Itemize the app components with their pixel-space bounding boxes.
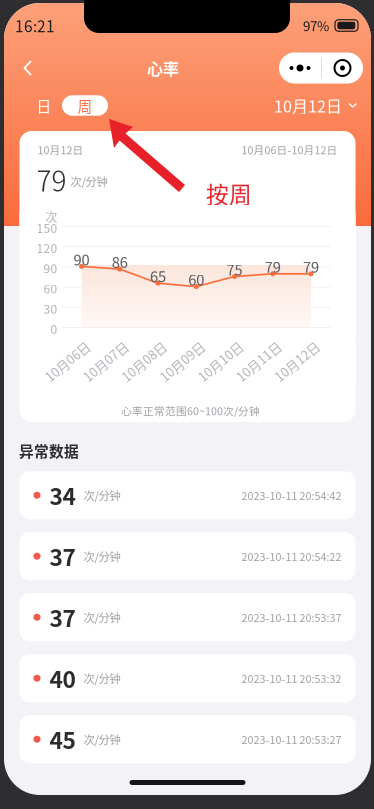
staticText: 10月06日-10月12日	[241, 142, 337, 157]
staticText: 90	[73, 248, 89, 270]
button[interactable]: 37	[19, 593, 355, 641]
staticText: 2023-10-11 20:54:42	[241, 487, 341, 503]
staticText: 周	[77, 95, 92, 116]
staticText: 10月06日	[40, 352, 94, 370]
staticText: 37	[49, 601, 75, 634]
staticText: 60	[188, 269, 204, 290]
staticText: 次/分钟	[83, 609, 120, 625]
staticText: 10月08日	[117, 352, 171, 370]
button[interactable]: 37	[19, 532, 355, 580]
staticText: 次/分钟	[83, 548, 120, 564]
staticText: 按周	[206, 177, 252, 210]
staticText: 2023-10-11 20:54:22	[241, 548, 341, 564]
staticText: 10月11日	[232, 352, 286, 370]
button[interactable]: 返回	[9, 49, 47, 87]
staticText: 次/分钟	[83, 487, 120, 503]
staticText: 10月10日	[193, 352, 247, 370]
staticText: 2023-10-11 20:53:37	[241, 609, 341, 625]
staticText: 2023-10-11 20:53:32	[241, 670, 341, 686]
staticText: 34	[49, 479, 75, 512]
staticText: 10月12日	[270, 352, 324, 370]
staticText: 2023-10-11 20:53:27	[241, 731, 341, 747]
button[interactable]: 34	[19, 471, 355, 519]
staticText: 次/分钟	[70, 173, 107, 189]
staticText: 79	[36, 159, 66, 199]
staticText: 10月09日	[155, 352, 209, 370]
staticText: 79	[265, 256, 281, 277]
button[interactable]: 更多	[279, 52, 363, 83]
button[interactable]: 45	[19, 715, 355, 763]
staticText: 心率	[147, 56, 179, 80]
staticText: 65	[150, 265, 166, 286]
staticText: 37	[49, 540, 75, 573]
staticText: 10月12日	[274, 94, 342, 117]
staticText: 异常数据	[19, 440, 79, 461]
button[interactable]: 周	[62, 95, 108, 116]
staticText: 30	[43, 300, 57, 317]
staticText: 16:21	[15, 14, 55, 37]
staticText: 次/分钟	[83, 670, 120, 686]
staticText: 90	[43, 259, 57, 277]
button[interactable]: 40	[19, 654, 355, 702]
staticText: 10月12日	[37, 142, 83, 157]
staticText: 150	[36, 219, 57, 236]
button[interactable]: 10月12日	[274, 94, 358, 117]
staticText: 10月07日	[79, 352, 133, 370]
button[interactable]: 日	[26, 95, 62, 116]
staticText: 60	[43, 280, 57, 297]
staticText: 97%	[303, 16, 329, 35]
staticText: 79	[303, 256, 319, 277]
staticText: 40	[49, 662, 75, 695]
staticText: 120	[36, 239, 57, 257]
staticText: 日	[36, 95, 51, 116]
staticText: 次	[45, 208, 57, 225]
staticText: 次/分钟	[83, 731, 120, 747]
staticText: 心率正常范围60~100次/分钟	[121, 403, 260, 418]
staticText: 75	[226, 258, 242, 280]
staticText: 86	[112, 251, 128, 272]
staticText: 0	[50, 320, 57, 337]
staticText: 45	[49, 723, 75, 756]
